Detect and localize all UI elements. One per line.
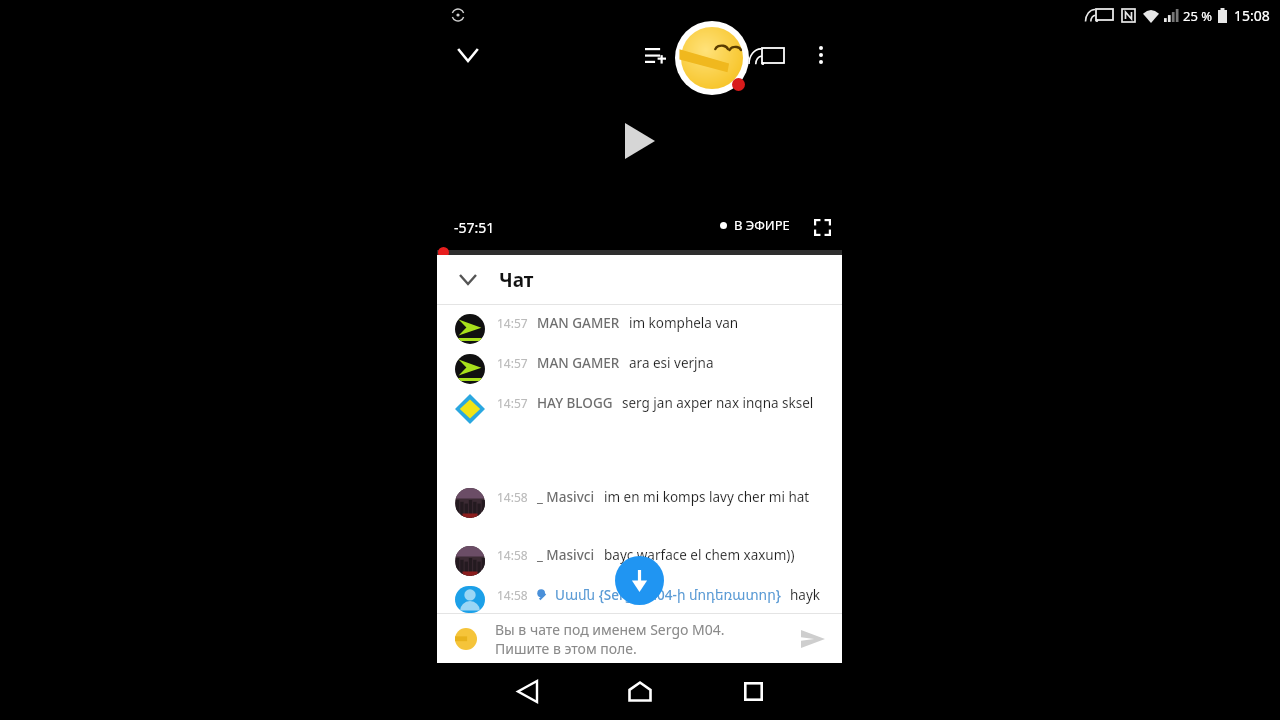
staticText: _ Masivci: [537, 546, 595, 564]
button[interactable]: 14:57: [455, 387, 830, 481]
staticText: ara esi verjna: [629, 354, 714, 372]
staticText: Вы в чате под именем Sergo M04.: [495, 620, 725, 639]
button[interactable]: 14:57: [455, 347, 830, 387]
staticText: Чат: [499, 267, 534, 293]
staticText: MAN GAMER: [537, 314, 620, 332]
button[interactable]: 14:58: [455, 539, 830, 579]
staticText: serg jan axper nax inqna sksel lezvin tv…: [622, 394, 830, 412]
button[interactable]: Чат: [437, 255, 842, 304]
button[interactable]: Fullscreen: [806, 211, 838, 243]
staticText: -57:51: [454, 218, 495, 237]
staticText: 14:57: [497, 355, 528, 371]
button[interactable]: Send: [784, 614, 842, 663]
staticText: 25 %: [1183, 7, 1213, 25]
staticText: Пишите в этом поле.: [495, 639, 637, 658]
button[interactable]: Channel avatar: [675, 21, 749, 95]
button[interactable]: 14:58: [455, 481, 830, 539]
button[interactable]: Home: [595, 663, 685, 720]
button[interactable]: Recent apps: [708, 663, 798, 720]
button[interactable]: More options: [801, 35, 841, 75]
staticText: im en mi komps lavy cher mi hat gamerni …: [604, 488, 830, 506]
button[interactable]: Add to queue: [635, 35, 675, 75]
button[interactable]: 14:57: [455, 307, 830, 347]
staticText: Սամն {Sergo M04-ի մոդեռատոր}: [555, 586, 781, 604]
staticText: 14:58: [497, 587, 528, 603]
staticText: im komphela van: [629, 314, 739, 332]
staticText: bayc warface el chem xaxum)): [604, 546, 795, 564]
button[interactable]: Scroll to latest message: [615, 556, 664, 605]
staticText: _ Masivci: [537, 488, 595, 506]
staticText: 15:08: [1234, 6, 1270, 25]
button[interactable]: Вы в чате под именем Sergo M04.: [437, 614, 842, 663]
button[interactable]: Cast: [752, 35, 794, 77]
button[interactable]: Play: [600, 105, 680, 177]
button[interactable]: Collapse player: [446, 33, 490, 77]
staticText: MAN GAMER: [537, 354, 620, 372]
staticText: В ЭФИРЕ: [734, 216, 790, 234]
staticText: 14:58: [497, 547, 528, 563]
button[interactable]: 14:58: [455, 579, 830, 613]
staticText: 14:58: [497, 489, 528, 505]
button[interactable]: Back: [482, 663, 572, 720]
staticText: hayk gamer et sax dues chi xaxcum: [790, 586, 830, 604]
staticText: 14:57: [497, 395, 528, 411]
staticText: HAY BLOGG: [537, 394, 613, 412]
staticText: 14:57: [497, 315, 528, 331]
